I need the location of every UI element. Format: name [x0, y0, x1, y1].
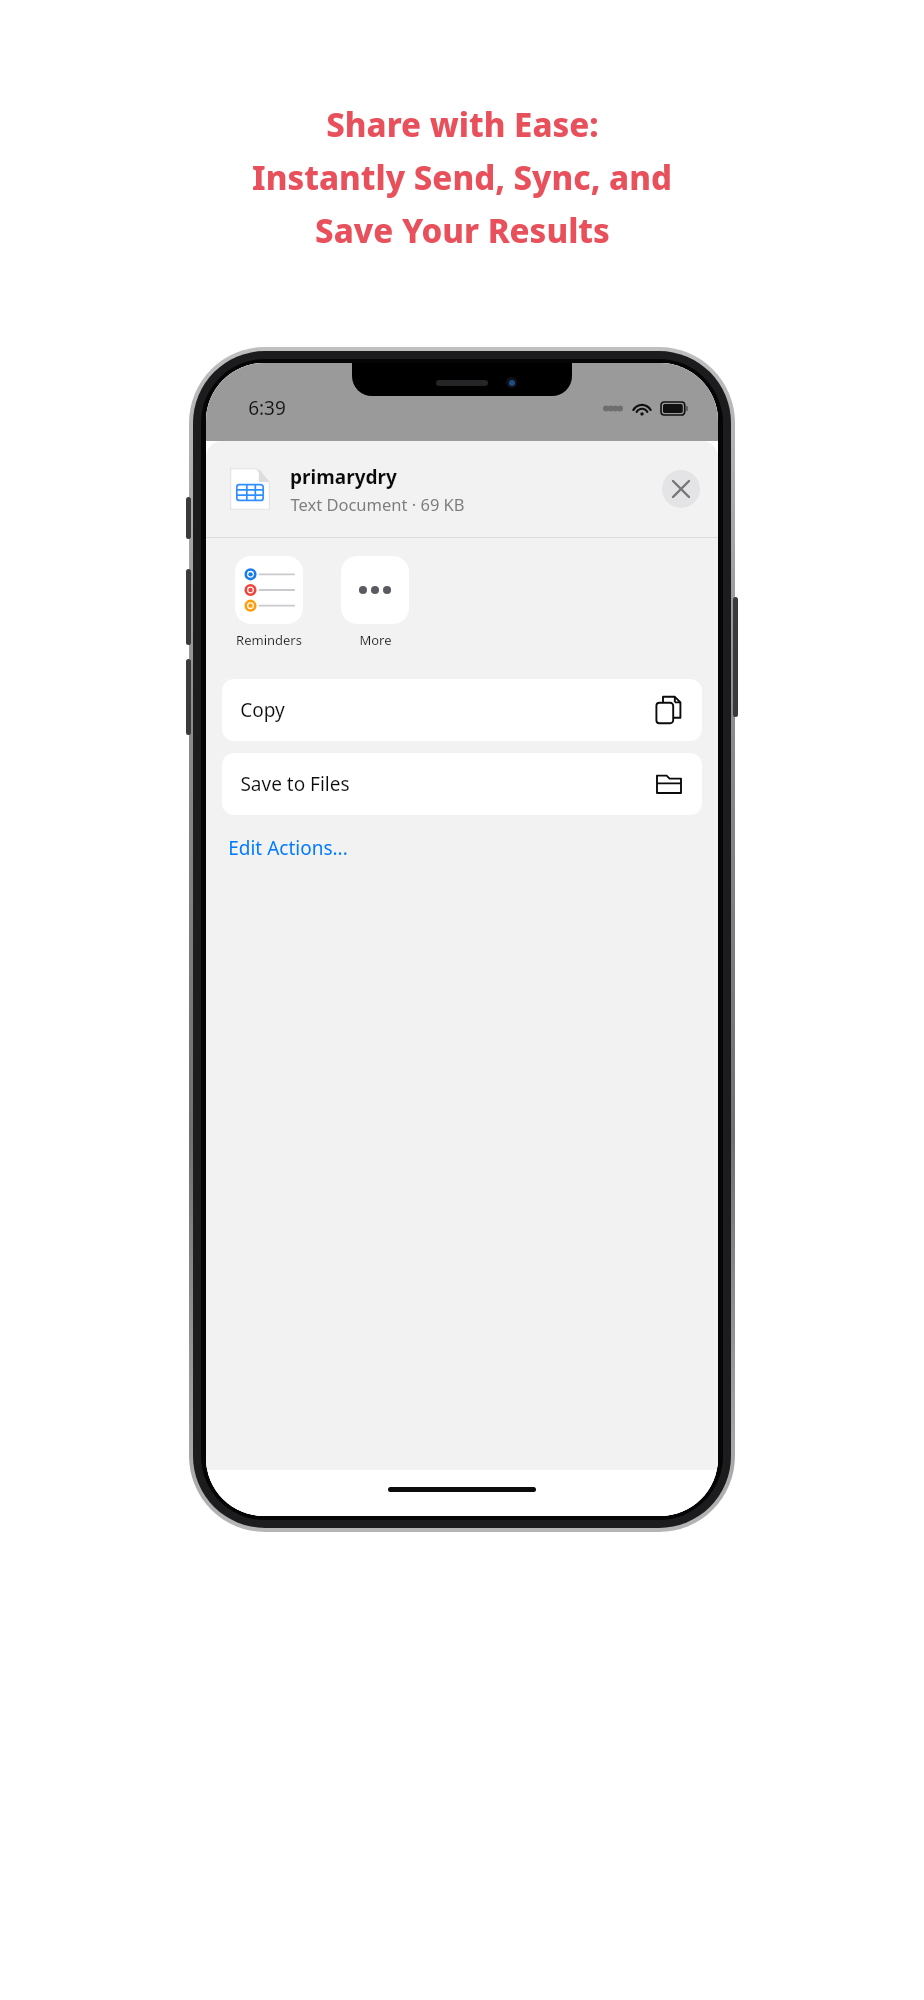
- button[interactable]: Edit Actions...: [228, 829, 718, 867]
- button[interactable]: More: [334, 556, 416, 649]
- staticText: Share with Ease:: [326, 102, 599, 147]
- staticText: primarydry: [290, 464, 397, 490]
- staticText: Text Document · 69 KB: [290, 493, 465, 515]
- staticText: More: [359, 631, 392, 649]
- button[interactable]: Reminders: [228, 556, 310, 649]
- staticText: Copy: [240, 697, 285, 723]
- button[interactable]: Copy: [222, 679, 702, 741]
- staticText: Instantly Send, Sync, and: [252, 155, 672, 200]
- button[interactable]: Close: [662, 470, 700, 508]
- staticText: Edit Actions...: [228, 835, 348, 861]
- staticText: Save Your Results: [315, 208, 610, 253]
- staticText: Reminders: [236, 631, 302, 649]
- staticText: Save to Files: [240, 771, 350, 797]
- staticText: 6:39: [248, 395, 286, 421]
- button[interactable]: Save to Files: [222, 753, 702, 815]
